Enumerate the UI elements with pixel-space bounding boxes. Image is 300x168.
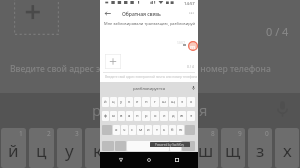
staticText: к	[128, 99, 131, 105]
button[interactable]: л	[160, 111, 168, 121]
button[interactable]: More options	[186, 8, 196, 18]
staticText: з	[181, 99, 184, 105]
button[interactable]: ю	[177, 125, 184, 135]
staticText: Введите свой адрес электронной почты или…	[10, 63, 271, 75]
button[interactable]: ь	[161, 125, 168, 135]
button[interactable]: 6	[140, 128, 164, 168]
button[interactable]: к	[126, 97, 133, 107]
staticText: й	[104, 99, 107, 105]
staticText: е	[136, 99, 139, 105]
button[interactable]: 8	[194, 128, 218, 168]
button[interactable]: х	[275, 128, 299, 168]
button[interactable]: й	[102, 97, 109, 107]
button[interactable]: 9	[221, 128, 245, 168]
staticText: Мне заблокировали транзакцию, разблокиру…	[104, 21, 196, 26]
staticText: 0 / 4	[266, 24, 289, 39]
staticText: ц	[112, 99, 115, 105]
button[interactable]: н	[142, 97, 150, 107]
staticText: 3	[75, 129, 79, 138]
button[interactable]: Back	[103, 8, 113, 18]
staticText: 5	[130, 129, 134, 138]
staticText: 7	[184, 129, 188, 138]
button[interactable]: о	[151, 111, 159, 121]
button[interactable]: ч	[121, 125, 128, 135]
staticText: разблокируется	[92, 100, 208, 120]
button[interactable]: Enter	[182, 141, 195, 151]
staticText: з	[256, 139, 265, 162]
staticText: 2	[47, 129, 51, 138]
button[interactable]: 5	[113, 128, 137, 168]
button[interactable]: р	[142, 111, 150, 121]
staticText: щ	[225, 139, 241, 162]
button[interactable]: д	[169, 111, 177, 121]
staticText: разблокируется	[133, 86, 166, 92]
staticText: в	[120, 113, 123, 119]
button[interactable]: с	[129, 125, 136, 135]
staticText: Powered by SwiftKey	[155, 143, 185, 147]
button[interactable]: а	[126, 111, 133, 121]
staticText: ш	[198, 139, 214, 162]
button[interactable]: ц	[110, 97, 117, 107]
button[interactable]: 7	[167, 128, 191, 168]
button[interactable]: Back	[114, 153, 128, 167]
button[interactable]: щ	[169, 97, 177, 107]
button[interactable]: т	[153, 125, 160, 135]
staticText: х	[190, 99, 193, 105]
button[interactable]: 4	[85, 128, 110, 168]
button[interactable]: 0	[248, 128, 272, 168]
button[interactable]: з	[178, 97, 186, 107]
staticText: ч	[123, 127, 126, 133]
staticText: щ	[171, 99, 175, 105]
staticText: я	[115, 127, 118, 133]
staticText: ф	[104, 113, 108, 119]
button[interactable]: 3	[57, 128, 82, 168]
staticText: г	[154, 99, 156, 105]
staticText: и	[147, 127, 150, 133]
staticText: й	[8, 139, 19, 162]
staticText: а	[128, 113, 131, 119]
staticText: m	[190, 43, 196, 50]
button[interactable]: в	[118, 111, 125, 121]
staticText: у	[120, 99, 123, 105]
button[interactable]: м	[137, 125, 144, 135]
button[interactable]: я	[113, 125, 120, 135]
staticText: о	[154, 113, 157, 119]
staticText: х	[283, 139, 292, 162]
staticText: 0 / 4	[187, 64, 194, 69]
button[interactable]: ф	[102, 111, 109, 121]
button[interactable]: и	[145, 125, 152, 135]
button[interactable]: г	[151, 97, 159, 107]
staticText: Введите свой адрес электронной почты или…	[105, 75, 198, 79]
button[interactable]: ш	[160, 97, 168, 107]
button[interactable]: э	[187, 111, 195, 121]
button[interactable]: б	[169, 125, 176, 135]
staticText: ь	[163, 127, 166, 133]
staticText: к	[93, 139, 103, 162]
staticText: ж	[180, 113, 184, 119]
button[interactable]: х	[187, 97, 195, 107]
staticText: е	[120, 139, 130, 162]
staticText: р	[145, 113, 148, 119]
button[interactable]: ж	[178, 111, 186, 121]
button[interactable]: Add attachment	[105, 54, 121, 69]
button[interactable]: 1	[1, 128, 26, 168]
button[interactable]: 2	[29, 128, 54, 168]
staticText: 8	[211, 129, 215, 138]
button[interactable]: Home	[142, 153, 156, 167]
button[interactable]: Recents	[170, 153, 184, 167]
button[interactable]: п	[134, 111, 141, 121]
staticText: с	[131, 127, 134, 133]
staticText: м	[139, 127, 143, 133]
button[interactable]: у	[118, 97, 125, 107]
staticText: г	[175, 139, 183, 162]
button[interactable]: е	[134, 97, 141, 107]
button[interactable]: Space	[127, 141, 169, 151]
staticText: 14:57	[177, 41, 185, 45]
button[interactable]: Period	[170, 141, 181, 151]
staticText: 14:57	[184, 1, 195, 7]
button[interactable]: ы	[110, 111, 117, 121]
